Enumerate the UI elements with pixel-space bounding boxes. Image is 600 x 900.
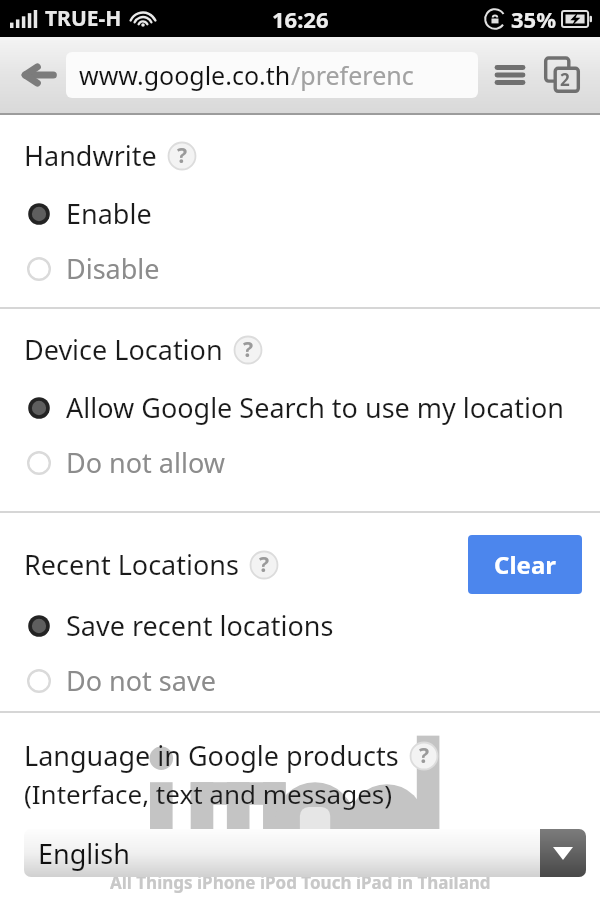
button[interactable]: Clear — [468, 535, 582, 594]
staticText: ? — [243, 335, 254, 364]
staticText: Save recent locations — [66, 607, 334, 644]
staticText: Recent Locations — [24, 546, 239, 583]
staticText: Allow Google Search to use my location — [66, 389, 564, 426]
staticText: All Things iPhone iPod Touch iPad in Tha… — [110, 871, 491, 894]
staticText: Enable — [66, 195, 152, 232]
button[interactable]: Enable — [24, 192, 582, 235]
staticText: www.google.co.th — [79, 58, 291, 92]
button[interactable]: Disable — [24, 247, 582, 290]
button[interactable]: Do not save — [24, 659, 582, 702]
button[interactable]: Save recent locations — [24, 604, 582, 647]
staticText: Disable — [66, 250, 160, 287]
button[interactable]: Menu — [488, 53, 532, 97]
button[interactable]: Help — [167, 141, 197, 171]
button[interactable]: Back — [14, 51, 62, 99]
staticText: Handwrite — [24, 137, 157, 174]
button[interactable]: Help — [409, 741, 439, 771]
button[interactable]: Tabs, 2 open — [538, 51, 586, 99]
staticText: 2 — [560, 68, 570, 91]
button[interactable]: Help — [233, 335, 263, 365]
staticText: Clear — [494, 548, 556, 581]
staticText: Do not save — [66, 662, 216, 699]
staticText: (Interface, text and messages) — [24, 776, 393, 811]
button[interactable]: Allow Google Search to use my location — [24, 386, 582, 429]
staticText: Device Location — [24, 331, 223, 368]
button[interactable]: Help — [249, 550, 279, 580]
staticText: ? — [419, 741, 430, 770]
staticText: English — [38, 835, 130, 872]
staticText: Do not allow — [66, 444, 225, 481]
staticText: TRUE-H — [45, 4, 122, 33]
staticText: /preferenc — [291, 58, 414, 92]
button[interactable]: English — [24, 829, 586, 877]
button[interactable]: www.google.co.th — [66, 52, 478, 98]
staticText: 16:26 — [272, 4, 329, 34]
staticText: ? — [177, 141, 188, 170]
staticText: 35% — [511, 4, 557, 34]
button[interactable]: Do not allow — [24, 441, 582, 484]
staticText: Language in Google products — [24, 737, 399, 774]
staticText: ? — [259, 550, 270, 579]
